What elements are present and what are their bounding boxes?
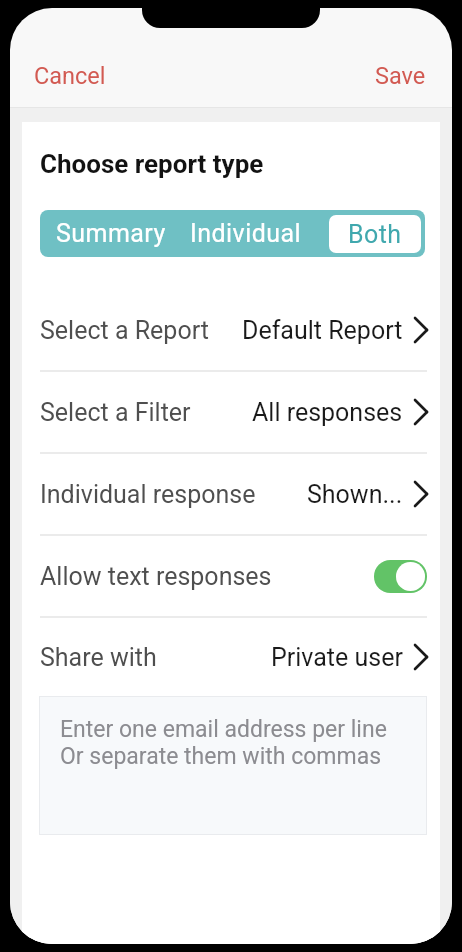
button[interactable]: Cancel [22, 55, 118, 97]
staticText: Individual [190, 219, 302, 248]
staticText: Save [375, 62, 426, 90]
button[interactable]: Enter one email address per line [39, 696, 427, 835]
staticText: Select a Report [40, 316, 209, 345]
button[interactable]: Allow text responses [374, 560, 427, 593]
staticText: Cancel [34, 62, 106, 90]
button[interactable]: Select a Filter [22, 372, 440, 452]
staticText: Shown... [307, 480, 403, 509]
button[interactable]: Save [363, 55, 438, 97]
staticText: Choose report type [40, 149, 264, 179]
button[interactable]: Both [329, 215, 421, 253]
staticText: Individual response [40, 480, 256, 509]
staticText: Default Report [242, 316, 403, 345]
staticText: All responses [252, 398, 403, 427]
button[interactable]: Select a Report [22, 290, 440, 370]
other: Open [415, 318, 427, 342]
other: Open [415, 400, 427, 424]
staticText: Share with [40, 643, 157, 672]
staticText: Allow text responses [40, 562, 272, 591]
other: Open [415, 482, 427, 506]
staticText: Private user [271, 643, 403, 672]
button[interactable]: Allow text responses [22, 536, 440, 616]
staticText: Select a Filter [40, 398, 191, 427]
staticText: Both [348, 220, 402, 249]
button[interactable]: Individual response [22, 454, 440, 534]
button[interactable]: Share with [22, 618, 440, 696]
other: Open [415, 645, 427, 669]
button[interactable]: Individual [178, 210, 314, 257]
button[interactable]: Summary [40, 210, 178, 257]
staticText: Enter one email address per line [60, 716, 387, 743]
staticText: Or separate them with commas [60, 743, 382, 770]
staticText: Summary [56, 219, 166, 248]
